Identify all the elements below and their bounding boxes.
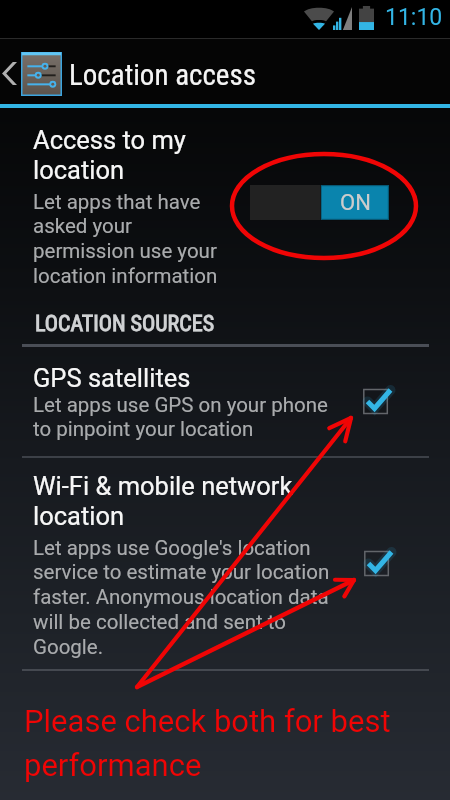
staticText: Let apps that have asked your permission… [33, 190, 232, 288]
staticText: Wi-Fi & mobile network location [33, 471, 313, 531]
button[interactable]: Navigate up [2, 44, 64, 100]
staticText: 11:10 [385, 4, 443, 31]
staticText: Let apps use GPS on your phone to pinpoi… [33, 393, 333, 441]
button[interactable] [0, 458, 450, 668]
button[interactable]: Checkbox, checked [363, 388, 395, 420]
button[interactable] [0, 110, 450, 300]
staticText: Please check both for best performance [24, 703, 434, 783]
staticText: Location access [69, 58, 256, 92]
staticText: Access to my location [33, 125, 232, 185]
staticText: Let apps use Google's location service t… [33, 536, 333, 659]
staticText: LOCATION SOURCES [35, 311, 215, 337]
button[interactable]: Location access switch, on [250, 185, 389, 220]
button[interactable] [0, 355, 450, 455]
staticText: ON [340, 190, 371, 216]
button[interactable]: Checkbox, checked [364, 550, 396, 582]
staticText: GPS satellites [33, 363, 191, 393]
